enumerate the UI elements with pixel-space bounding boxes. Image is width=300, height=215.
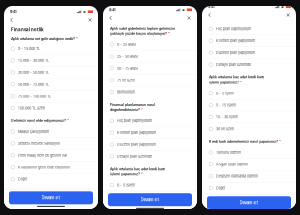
staticText: Kısmen plan yapıyorum [216,38,255,43]
staticText: * [140,107,143,112]
button[interactable]: Serbest meslek sahibiyim [4,138,98,149]
staticText: 0 - 5 işlem [216,91,234,95]
button[interactable]: Back [205,10,214,20]
staticText: Kısmen plan yapıyorum [117,130,156,135]
staticText: Aylık ortalama kaç adet kredi kartı [209,75,264,79]
staticText: Kredi kartı ödemelerinizi nasıl yaparsın… [209,139,278,144]
staticText: Serbest meslek sahibiyim [18,141,60,146]
staticText: yaklaşık yüzde kaçını oluşturuyor? [110,31,167,36]
button[interactable]: 15.000 - 30.000 TL [4,55,98,66]
staticText: 15.000 - 30.000 TL [18,58,49,63]
staticText: 0 - 25 arası [117,42,136,47]
staticText: Detaylı plan üzerinde [117,154,152,159]
button[interactable]: Devam et [207,196,291,209]
button[interactable]: 0 - 15.000 TL [4,43,98,54]
staticText: işlemi yaparsınız? [209,80,239,84]
button[interactable]: Kısmen plan yapıyorum [103,127,197,138]
button[interactable]: Hiç plan yapmıyorum [103,115,197,126]
staticText: 15 - 30 işlem [216,115,238,119]
staticText: Hem maaş hem ek gelirim var [18,153,67,158]
button[interactable]: Back [106,13,115,23]
staticText: 0 - 5 işlem [117,183,135,187]
button[interactable]: Close [283,10,293,20]
button[interactable]: Kısmen plan yapıyorum [202,35,296,47]
staticText: Aylık sabit giderleriniz toplam gelirini… [110,26,175,31]
staticText: 75 ve üzeri [117,78,135,82]
staticText: 25 - 50 arası [117,54,138,59]
staticText: 9:41 [109,7,116,12]
button[interactable]: 25 - 50 arası [103,51,197,62]
button[interactable]: Detaylı plan üzerinde [202,59,296,70]
staticText: Devam et [239,200,258,205]
staticText: Tümünü öderim [216,150,241,155]
button[interactable]: Hem maaş hem ek gelirim var [4,149,98,161]
button[interactable]: Tümünü öderim [202,146,296,158]
button[interactable]: 5 - 15 işlem [202,99,296,111]
staticText: 30.000 - 50.000 TL [18,70,49,75]
button[interactable]: 0 - 5 işlem [103,179,197,191]
button[interactable]: 30 ve üzeri [202,123,296,135]
staticText: Değişen oranlarda öderim [216,174,258,178]
staticText: * [239,80,242,84]
staticText: Hiç plan yapmıyorum [216,27,251,31]
staticText: 5 - 15 işlem [216,103,236,107]
staticText: Bilmiyorum [117,90,135,94]
staticText: Düzenli plan yapıyorum [117,142,156,147]
staticText: 50 - 75 arası [117,66,138,70]
staticText: 75.000 - 100.000 TL [18,94,51,98]
button[interactable]: Bilmiyorum [103,86,197,98]
button[interactable]: Diğer [4,173,98,185]
button[interactable]: Hiç plan yapmıyorum [202,23,296,35]
staticText: Kira/yatırım geliri elde ediyorum [18,165,70,169]
staticText: Finansal planlamanızı nasıl [110,102,155,107]
staticText: değerlendirirsiniz? [110,107,140,112]
button[interactable]: Close [85,15,95,25]
button[interactable]: Düzenli plan yapıyorum [103,139,197,150]
button[interactable]: Devam et [9,191,93,204]
button[interactable]: Maaşlı çalışıyorum [4,126,98,137]
staticText: * [75,36,78,41]
staticText: * [66,118,69,123]
button[interactable]: 75 ve üzeri [103,74,197,86]
staticText: * [140,172,143,176]
staticText: Detaylı plan üzerinde [216,62,251,67]
staticText: Maaşlı çalışıyorum [18,129,49,134]
staticText: Gelirinizi nasıl elde ediyorsunuz? [11,118,66,123]
staticText: 9:41 [208,4,215,9]
button[interactable]: 15 - 30 işlem [202,111,296,123]
button[interactable]: 75.000 - 100.000 TL [4,90,98,102]
button[interactable]: Back [7,15,16,25]
staticText: 0 - 15.000 TL [18,46,40,51]
staticText: 50.000 - 75.000 TL [18,82,49,86]
staticText: Asgari tutarı öderim [216,162,248,166]
staticText: Diğer [18,177,27,181]
button[interactable]: Asgari tutarı öderim [202,158,296,170]
staticText: * [167,31,170,36]
staticText: Devam et [41,195,60,200]
button[interactable]: Devam et [108,193,192,206]
staticText: 9:41 [10,9,17,14]
staticText: Devam et [140,197,159,202]
button[interactable]: Detaylı plan üzerinde [103,151,197,162]
staticText: 100.000 TL üzeri [18,106,45,110]
button[interactable]: 100.000 TL üzeri [4,102,98,114]
staticText: işlemi yaparsınız? [110,172,140,176]
staticText: Aylık ortalama net gelir aralığınız nedi… [11,36,75,41]
button[interactable]: Düzenli plan yapıyorum [202,47,296,58]
staticText: * [278,139,281,144]
button[interactable]: 50 - 75 arası [103,62,197,74]
button[interactable]: 30.000 - 50.000 TL [4,67,98,78]
staticText: Aylık ortalama kaç adet kredi kartı [110,167,165,171]
staticText: Hiç plan yapmıyorum [117,118,152,123]
button[interactable]: Close [184,13,194,23]
staticText: Finansal netlik [11,27,44,32]
staticText: Diğer [216,186,225,190]
staticText: 30 ve üzeri [216,127,234,131]
button[interactable]: 50.000 - 75.000 TL [4,78,98,90]
button[interactable]: 0 - 25 arası [103,39,197,50]
button[interactable]: Değişen oranlarda öderim [202,170,296,182]
button[interactable]: Kira/yatırım geliri elde ediyorum [4,161,98,173]
button[interactable]: Diğer [202,182,296,194]
staticText: Düzenli plan yapıyorum [216,50,255,55]
button[interactable]: 0 - 5 işlem [202,87,296,99]
